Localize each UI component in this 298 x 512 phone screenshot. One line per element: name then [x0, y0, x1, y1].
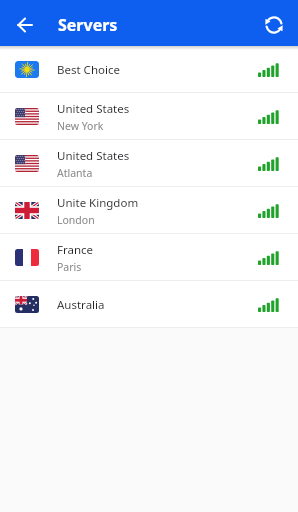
staticText: Servers — [58, 14, 118, 36]
staticText: New York — [57, 119, 104, 133]
staticText: London — [57, 213, 95, 227]
staticText: United States — [57, 148, 130, 164]
button[interactable]: Unite Kingdom — [0, 187, 298, 234]
staticText: France — [57, 242, 94, 258]
button[interactable]: United States — [0, 93, 298, 140]
staticText: Unite Kingdom — [57, 195, 139, 211]
button[interactable] — [263, 14, 285, 36]
button[interactable]: France — [0, 234, 298, 281]
staticText: Atlanta — [57, 166, 93, 180]
staticText: United States — [57, 101, 130, 117]
button[interactable]: Australia — [0, 281, 298, 328]
button[interactable]: United States — [0, 140, 298, 187]
staticText: Best Choice — [57, 62, 120, 78]
button[interactable]: Best Choice — [0, 46, 298, 93]
staticText: Paris — [57, 260, 82, 274]
button[interactable] — [16, 16, 34, 34]
staticText: Australia — [57, 297, 105, 313]
